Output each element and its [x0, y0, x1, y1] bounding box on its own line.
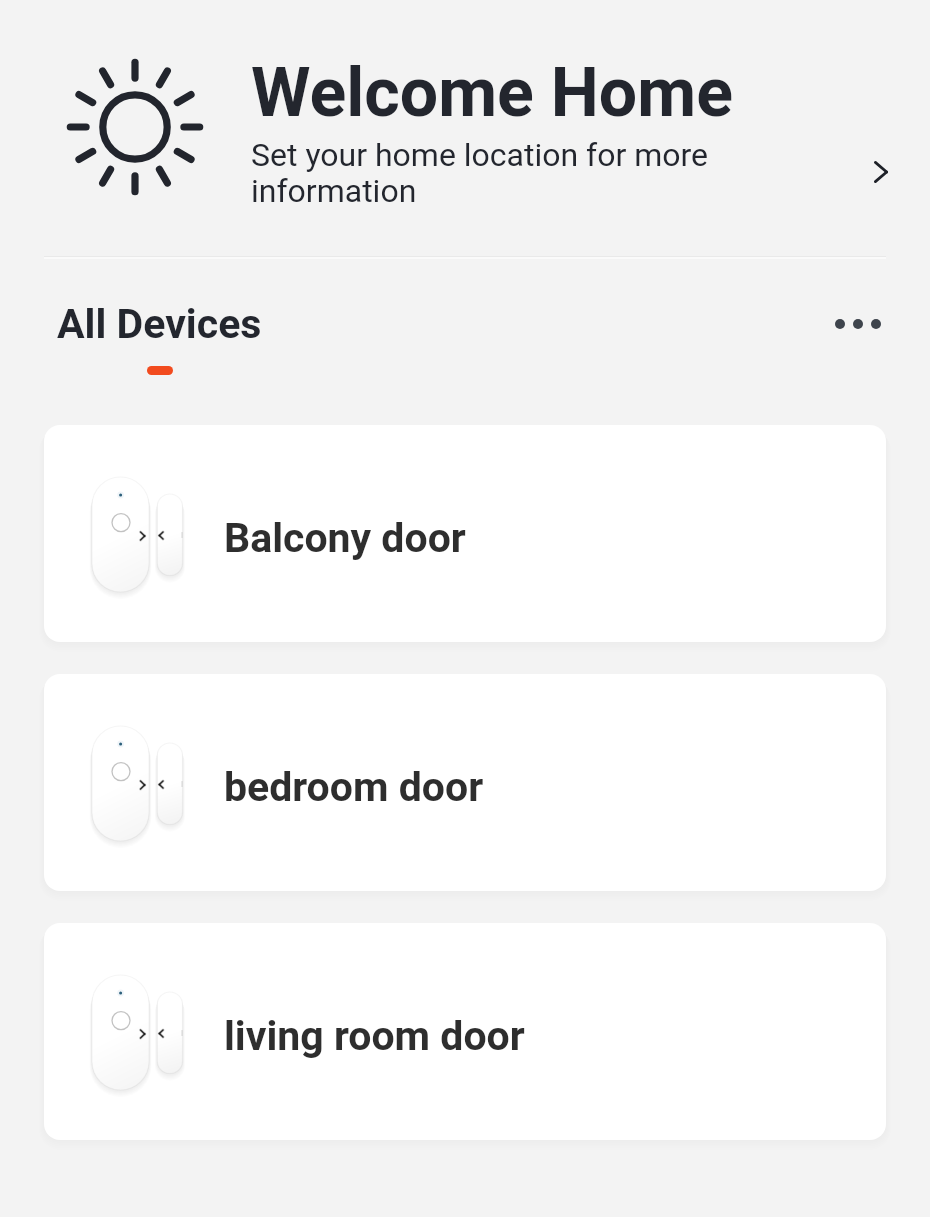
- staticText: Set your home location for more informat…: [251, 136, 747, 209]
- staticText: bedroom door: [224, 763, 484, 811]
- button[interactable]: All Devices: [50, 294, 270, 382]
- staticText: All Devices: [57, 300, 262, 348]
- button[interactable]: Set home location: [857, 148, 905, 196]
- staticText: living room door: [224, 1012, 525, 1060]
- button[interactable]: [44, 30, 886, 226]
- button[interactable]: bedroom door: [44, 674, 886, 891]
- button[interactable]: living room door: [44, 923, 886, 1140]
- button[interactable]: Balcony door: [44, 425, 886, 642]
- button[interactable]: More options: [826, 291, 890, 356]
- staticText: Welcome Home: [251, 53, 733, 133]
- staticText: Balcony door: [224, 514, 466, 562]
